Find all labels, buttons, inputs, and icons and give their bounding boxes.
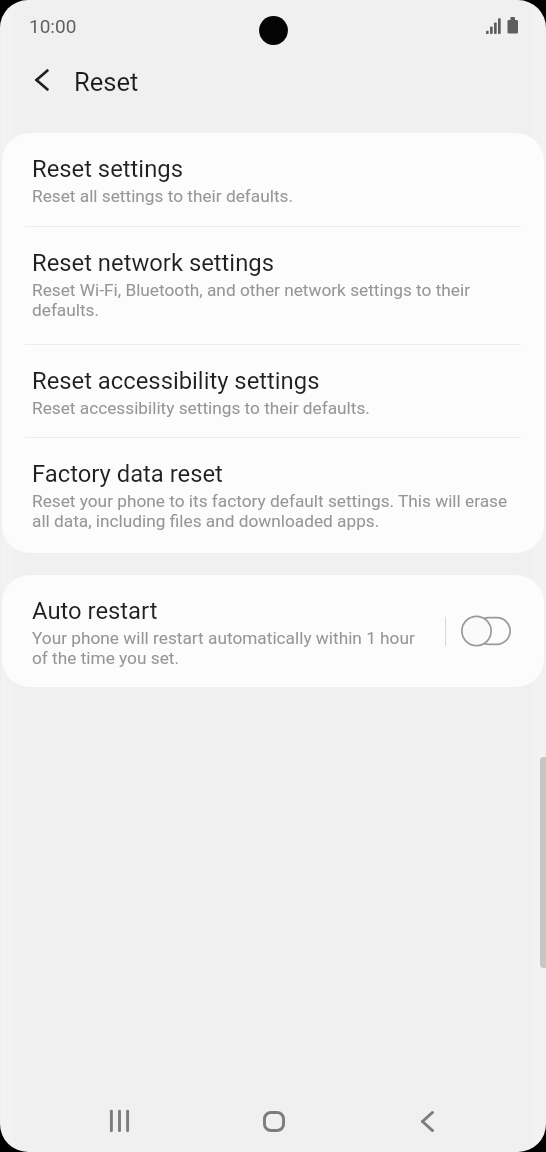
staticText: Reset your phone to its factory default …	[32, 491, 512, 531]
button[interactable]: Auto restart	[2, 575, 544, 687]
button[interactable]: Reset network settings	[2, 227, 544, 345]
staticText: Auto restart	[32, 597, 158, 625]
staticText: Reset all settings to their defaults.	[32, 186, 492, 206]
button[interactable]: Home	[239, 1086, 309, 1152]
staticText: Your phone will restart automatically wi…	[32, 628, 424, 668]
button[interactable]: Reset accessibility settings	[2, 345, 544, 438]
button[interactable]: Factory data reset	[2, 438, 544, 553]
staticText: 10:00	[29, 15, 77, 37]
button[interactable]: Recent apps	[86, 1086, 156, 1152]
button[interactable]: Reset settings	[2, 133, 544, 227]
staticText: Reset accessibility settings	[32, 367, 320, 395]
staticText: Factory data reset	[32, 460, 223, 488]
staticText: Reset	[74, 67, 139, 97]
button[interactable]: Auto restart off	[455, 606, 517, 656]
button[interactable]: Navigate up	[14, 52, 70, 108]
staticText: Reset Wi-Fi, Bluetooth, and other networ…	[32, 280, 477, 320]
staticText: Reset accessibility settings to their de…	[32, 398, 492, 418]
button[interactable]: Back	[392, 1086, 462, 1152]
staticText: Reset settings	[32, 155, 183, 183]
staticText: Reset network settings	[32, 249, 274, 277]
